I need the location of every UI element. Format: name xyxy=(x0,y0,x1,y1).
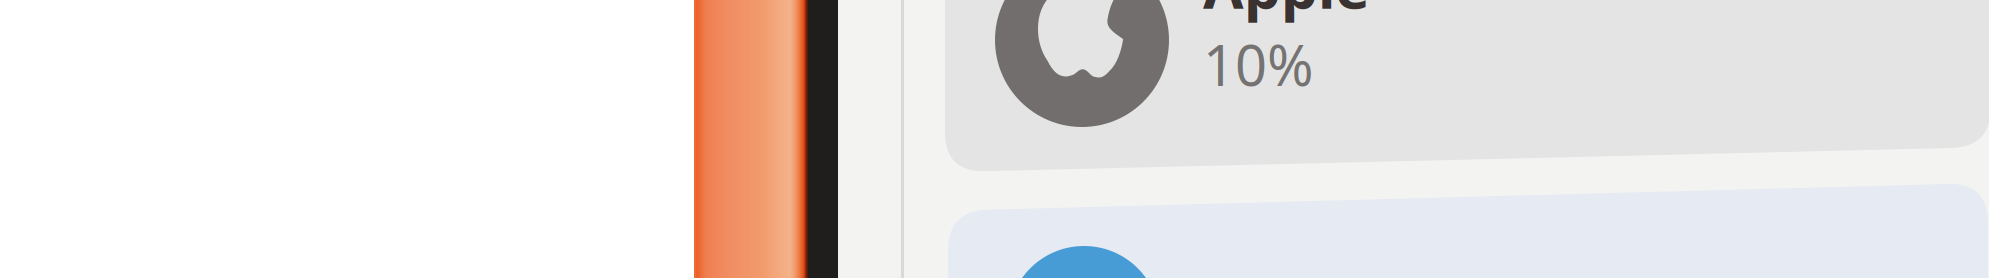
button[interactable]: Second list row xyxy=(0,0,1989,278)
button[interactable]: Apple xyxy=(0,0,1989,278)
staticText: 10% xyxy=(1203,27,1314,101)
staticText: Apple xyxy=(1203,0,1370,25)
